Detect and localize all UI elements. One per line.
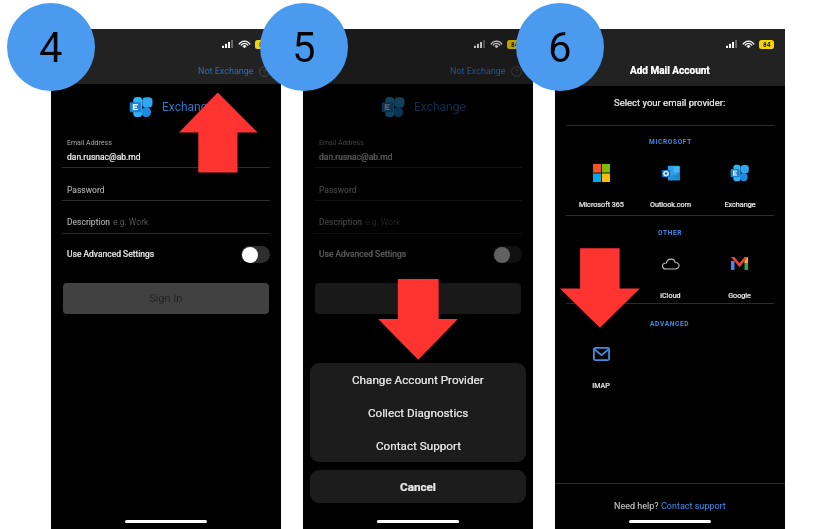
staticText: Need help? [614, 501, 661, 512]
staticText: Password [319, 185, 357, 195]
button[interactable]: Collect Diagnostics [310, 396, 526, 429]
staticText: 84 [763, 41, 771, 49]
staticText: 5 [292, 23, 316, 72]
button[interactable]: iCloud [636, 252, 705, 274]
button[interactable]: Cancel [310, 470, 526, 503]
button[interactable]: Outlook.com [636, 162, 705, 184]
staticText: Cancel [400, 480, 436, 494]
staticText: e.g. Work [113, 217, 149, 227]
button[interactable]: Sign In [315, 283, 521, 314]
button[interactable]: Sign In [63, 283, 269, 314]
staticText: ADVANCED [650, 320, 690, 328]
staticText: Microsoft 365 [579, 200, 624, 208]
staticText: Exchange [414, 100, 466, 114]
staticText: Sign In [149, 292, 183, 305]
staticText: Use Advanced Settings [67, 249, 155, 259]
staticText: ? [263, 68, 267, 76]
staticText: IMAP [592, 381, 610, 389]
staticText: Select your email provider: [614, 97, 726, 108]
staticText: Contact Support [376, 439, 461, 453]
button[interactable]: Use Advanced Settings [319, 243, 522, 265]
staticText: 84 [259, 41, 267, 49]
staticText: Description [67, 217, 113, 227]
staticText: 84 [511, 41, 519, 49]
button[interactable]: Exchange [705, 162, 774, 184]
staticText: Use Advanced Settings [319, 249, 407, 259]
staticText: Description [319, 217, 365, 227]
other: Help [511, 66, 522, 77]
staticText: Google [728, 291, 751, 299]
staticText: e.g. Work [365, 217, 401, 227]
staticText: dan.rusnac@ab.md [67, 152, 141, 162]
staticText: Exchange [162, 100, 214, 114]
staticText: OTHER [658, 229, 683, 237]
staticText: Exchange [724, 200, 756, 208]
staticText: Email Address [67, 139, 112, 147]
staticText: Password [67, 185, 105, 195]
button[interactable]: Contact Support [310, 429, 526, 462]
staticText: 4 [39, 23, 63, 72]
button[interactable]: Not Exchange [450, 66, 522, 77]
button[interactable]: IMAP [566, 343, 636, 365]
staticText: 12:43 [567, 39, 588, 48]
staticText: Change Account Provider [352, 373, 484, 387]
staticText: MICROSOFT [649, 138, 692, 146]
button[interactable]: Not Exchange [198, 66, 270, 77]
other: Help [259, 66, 270, 77]
button[interactable]: Google [705, 252, 774, 274]
staticText: ? [515, 68, 519, 76]
button[interactable]: Microsoft 365 [566, 162, 636, 184]
button[interactable]: Contact support [661, 501, 726, 512]
staticText: iCloud [660, 291, 681, 299]
staticText: Outlook.com [650, 200, 691, 208]
staticText: Add Mail Account [630, 65, 710, 77]
staticText: Collect Diagnostics [368, 406, 469, 420]
staticText: dan.rusnac@ab.md [319, 152, 393, 162]
staticText: Not Exchange [450, 66, 506, 77]
button[interactable]: Change Account Provider [310, 363, 526, 396]
staticText: Not Exchange [198, 66, 254, 77]
staticText: 6 [548, 23, 572, 72]
staticText: Email Address [319, 139, 364, 147]
button[interactable]: Use Advanced Settings [67, 243, 270, 265]
